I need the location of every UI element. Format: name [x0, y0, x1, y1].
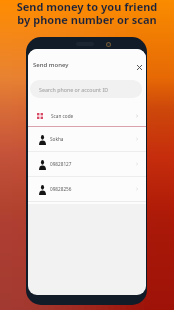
- staticText: 09828127: [50, 161, 72, 167]
- staticText: 09828256: [50, 186, 72, 192]
- button[interactable]: Scan code: [28, 105, 146, 126]
- button[interactable]: 09828127: [28, 152, 146, 176]
- staticText: Search phone or account ID: [39, 86, 109, 93]
- staticText: Scan code: [51, 113, 74, 119]
- staticText: Send money to you friend by phone number…: [0, 0, 174, 27]
- button[interactable]: 09828256: [28, 177, 146, 201]
- button[interactable]: Close: [132, 60, 146, 74]
- button[interactable]: Search phone or account ID: [30, 80, 142, 98]
- button[interactable]: Sokha: [28, 127, 146, 151]
- staticText: Send money: [33, 61, 69, 69]
- staticText: Sokha: [50, 136, 64, 142]
